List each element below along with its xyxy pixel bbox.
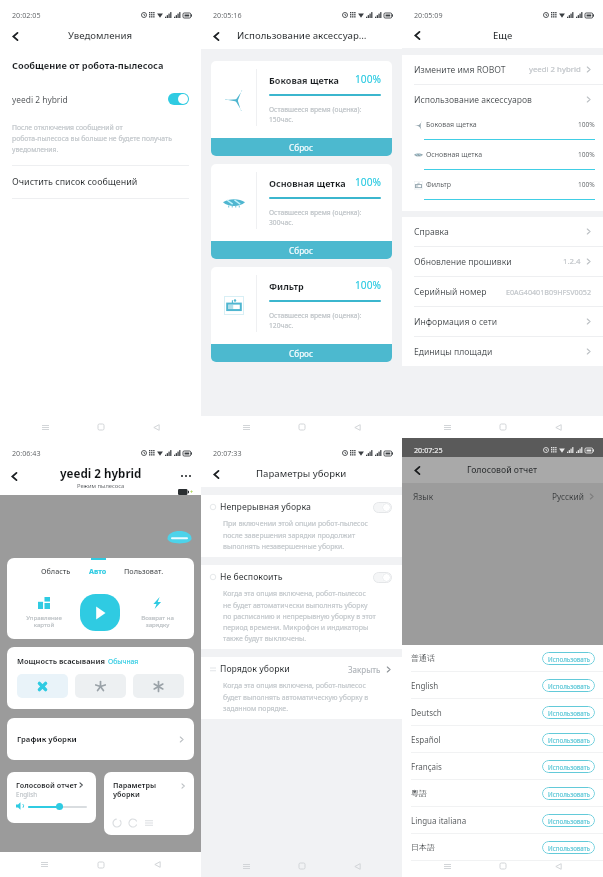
staticText: Боковая щетка bbox=[426, 120, 477, 130]
button[interactable]: Не беспокоить bbox=[201, 565, 402, 589]
button[interactable]: Lingua italiana bbox=[402, 807, 603, 833]
button[interactable]: English bbox=[402, 672, 603, 698]
staticText: Español bbox=[411, 734, 441, 745]
button[interactable]: Recents bbox=[32, 852, 57, 877]
button[interactable]: Back bbox=[145, 416, 167, 438]
staticText: Обновление прошивки bbox=[414, 256, 512, 268]
button[interactable]: Использовать bbox=[542, 733, 595, 746]
staticText: 100% bbox=[355, 278, 381, 292]
staticText: Еще bbox=[493, 29, 513, 42]
button[interactable]: Использовать bbox=[542, 760, 595, 773]
button[interactable]: yeedi 2 hybrid bbox=[0, 89, 201, 109]
button[interactable]: Обновление прошивки bbox=[402, 247, 603, 276]
button[interactable]: Back bbox=[5, 467, 23, 485]
staticText: Использовать bbox=[548, 790, 590, 798]
button[interactable]: Start cleaning bbox=[80, 594, 120, 631]
button[interactable]: Recents bbox=[436, 416, 458, 438]
button[interactable]: Использовать bbox=[542, 679, 595, 692]
button[interactable]: Français bbox=[402, 753, 603, 779]
staticText: 100% bbox=[355, 175, 381, 189]
button[interactable]: More options bbox=[177, 467, 195, 485]
button[interactable]: Параметры уборки bbox=[104, 772, 194, 835]
button[interactable]: Информация о сети bbox=[402, 307, 603, 336]
button[interactable]: Back bbox=[346, 416, 368, 438]
staticText: Использовать bbox=[548, 682, 590, 690]
button[interactable]: Сброс bbox=[211, 344, 392, 362]
button[interactable]: Порядок уборки bbox=[201, 657, 402, 681]
button[interactable]: Использовать bbox=[542, 814, 595, 827]
staticText: 100% bbox=[578, 120, 595, 129]
button[interactable]: Back bbox=[207, 465, 225, 483]
button[interactable]: Справка bbox=[402, 217, 603, 246]
staticText: При включении этой опции робот-пылесос п… bbox=[223, 519, 380, 551]
staticText: 20:05:09 bbox=[414, 10, 443, 20]
button[interactable]: Единицы площади bbox=[402, 337, 603, 366]
staticText: Использовать bbox=[548, 817, 590, 825]
button[interactable]: Измените имя ROBOT bbox=[402, 55, 603, 84]
button[interactable]: Пользоват. bbox=[124, 558, 164, 576]
button[interactable]: Recents bbox=[235, 855, 257, 877]
button[interactable]: Серийный номер bbox=[402, 277, 603, 306]
staticText: Lingua italiana bbox=[411, 815, 467, 826]
button[interactable]: Back bbox=[346, 855, 368, 877]
button[interactable]: Recents bbox=[436, 855, 458, 877]
staticText: Основная щетка bbox=[269, 177, 346, 189]
button[interactable]: 粵語 bbox=[402, 780, 603, 806]
button[interactable]: Управление картой bbox=[7, 597, 80, 629]
staticText: 20:07:25 bbox=[414, 445, 443, 455]
button[interactable]: Сброс bbox=[211, 241, 392, 259]
staticText: Фильтр bbox=[269, 280, 304, 292]
button[interactable]: Back bbox=[207, 27, 225, 45]
button[interactable]: Непрерывная уборка bbox=[201, 495, 402, 519]
button[interactable]: Область bbox=[41, 558, 71, 576]
button[interactable]: 普通话 bbox=[402, 645, 603, 671]
button[interactable]: Español bbox=[402, 726, 603, 752]
staticText: После отключения сообщений от робота-пыл… bbox=[12, 123, 195, 154]
button[interactable]: Home bbox=[492, 416, 514, 438]
button[interactable]: Suction level 2 bbox=[75, 674, 126, 698]
staticText: Серийный номер bbox=[414, 286, 487, 298]
button[interactable]: Recents bbox=[235, 416, 257, 438]
staticText: Обычная bbox=[108, 657, 139, 666]
button[interactable]: Suction level 3 bbox=[133, 674, 184, 698]
button[interactable]: Back bbox=[547, 855, 569, 877]
staticText: Язык bbox=[413, 491, 434, 502]
button[interactable]: Использовать bbox=[542, 841, 595, 854]
staticText: Мощность всасывания bbox=[17, 656, 105, 666]
button[interactable]: 日本語 bbox=[402, 834, 603, 860]
button[interactable]: Использовать bbox=[542, 706, 595, 719]
button[interactable]: Home bbox=[291, 855, 313, 877]
button[interactable]: Использование аксессуаров bbox=[402, 85, 603, 114]
button[interactable]: Home bbox=[291, 416, 313, 438]
button[interactable]: Использовать bbox=[542, 652, 595, 665]
staticText: Информация о сети bbox=[414, 316, 498, 328]
button[interactable]: Back bbox=[145, 852, 170, 877]
button[interactable]: Использовать bbox=[542, 787, 595, 800]
button[interactable]: Suction level 1 bbox=[17, 674, 68, 698]
button[interactable]: Home bbox=[88, 852, 113, 877]
staticText: Голосовой отчет bbox=[467, 464, 538, 476]
button[interactable]: Очистить список сообщений bbox=[0, 166, 201, 198]
staticText: Режим пылесоса bbox=[77, 482, 125, 490]
button[interactable]: Home bbox=[492, 855, 514, 877]
button[interactable]: Deutsch bbox=[402, 699, 603, 725]
staticText: 20:06:43 bbox=[12, 448, 41, 458]
button[interactable]: Back bbox=[547, 416, 569, 438]
staticText: Не беспокоить bbox=[220, 571, 283, 583]
button[interactable]: Home bbox=[90, 416, 112, 438]
staticText: Сброс bbox=[289, 348, 314, 359]
staticText: E0AG40401B09HFSV0052 bbox=[506, 287, 592, 297]
staticText: Сообщение от робота-пылесоса bbox=[12, 59, 164, 72]
button[interactable]: График уборки bbox=[7, 718, 194, 760]
button[interactable]: Возврат на зарядку bbox=[120, 597, 194, 629]
button[interactable]: Back bbox=[6, 27, 24, 45]
button[interactable]: Авто bbox=[89, 558, 107, 576]
staticText: Авто bbox=[89, 566, 107, 576]
button[interactable]: Recents bbox=[34, 416, 56, 438]
button[interactable]: Back bbox=[408, 26, 426, 44]
button[interactable]: Сброс bbox=[211, 138, 392, 156]
staticText: Оставшееся время (оценка): 120час. bbox=[269, 311, 362, 330]
staticText: 普通话 bbox=[411, 653, 435, 663]
button[interactable]: Back bbox=[408, 461, 426, 479]
button[interactable]: Голосовой отчет bbox=[7, 772, 96, 823]
